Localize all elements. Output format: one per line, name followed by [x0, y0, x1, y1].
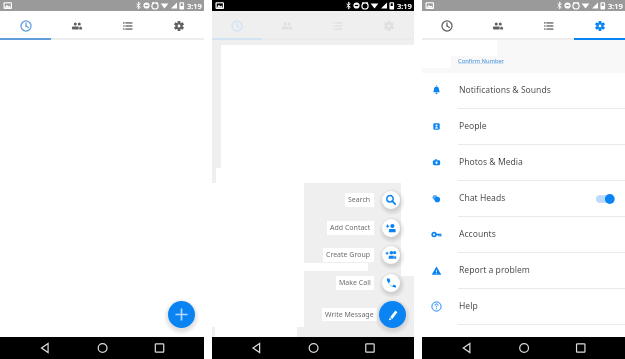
button[interactable]: Settings: [574, 11, 625, 38]
button[interactable]: Recents: [422, 11, 472, 38]
button[interactable]: Chats: [523, 11, 574, 38]
staticText: Accounts: [459, 228, 496, 240]
staticText: 3:19: [187, 1, 202, 11]
button[interactable]: Confirm Number: [458, 57, 505, 65]
button[interactable]: Recents: [212, 11, 262, 38]
button[interactable]: Settings: [153, 11, 204, 38]
button[interactable]: Make Call: [382, 274, 400, 292]
staticText: Notifications & Sounds: [459, 84, 551, 96]
button[interactable]: Report a problem: [422, 253, 625, 289]
staticText: Make Call: [339, 278, 371, 288]
button[interactable]: Notifications & Sounds: [422, 73, 625, 109]
button[interactable]: Search: [382, 191, 400, 209]
button[interactable]: Chat Heads toggle: [596, 193, 616, 205]
button[interactable]: Create Group: [382, 246, 400, 264]
button[interactable]: People: [51, 11, 102, 38]
button[interactable]: People: [422, 109, 625, 145]
staticText: People: [459, 120, 487, 132]
button[interactable]: Photos & Media: [422, 145, 625, 181]
button[interactable]: Accounts: [422, 217, 625, 253]
staticText: Photos & Media: [459, 156, 523, 168]
button[interactable]: Settings: [363, 11, 414, 38]
button[interactable]: Make Call: [336, 276, 374, 290]
staticText: Search: [348, 195, 371, 205]
button[interactable]: Chat Heads: [422, 181, 625, 217]
staticText: Create Group: [326, 250, 371, 260]
button[interactable]: Help: [422, 289, 625, 325]
staticText: 3:19: [608, 1, 623, 11]
staticText: Chat Heads: [459, 192, 506, 204]
staticText: 3:19: [397, 1, 412, 11]
button[interactable]: Add Contact: [327, 221, 374, 235]
button[interactable]: Write Message: [379, 301, 406, 328]
staticText: Report a problem: [459, 264, 530, 276]
button[interactable]: People: [472, 11, 523, 38]
button[interactable]: Add Contact: [382, 219, 400, 237]
staticText: Add Contact: [330, 223, 371, 233]
button[interactable]: New message: [168, 301, 195, 328]
button[interactable]: Recents: [0, 11, 51, 38]
button[interactable]: Create Group: [323, 248, 374, 262]
staticText: Help: [459, 300, 478, 312]
staticText: Write Message: [325, 310, 374, 320]
button[interactable]: Chats: [102, 11, 153, 38]
button[interactable]: Search: [345, 193, 374, 207]
